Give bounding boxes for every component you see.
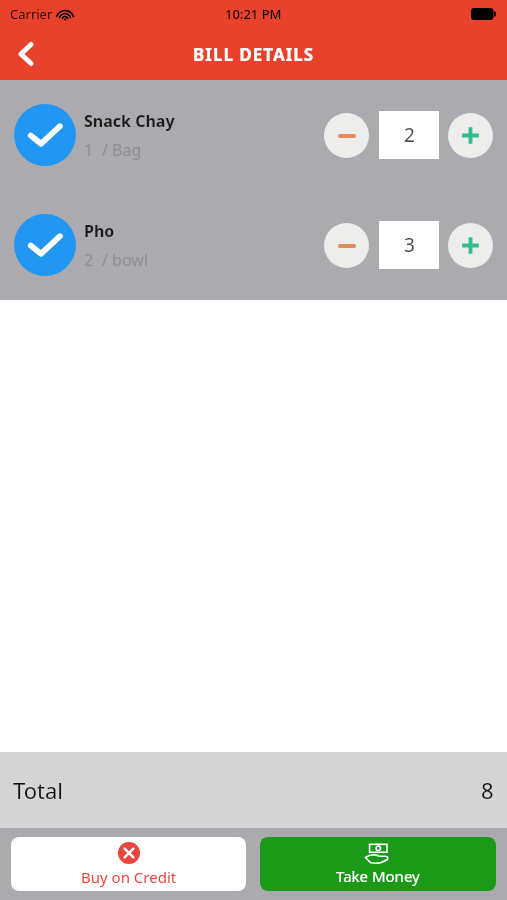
- staticText: / Bag: [102, 139, 142, 161]
- button[interactable]: Toggle Snack Chay: [14, 104, 76, 166]
- staticText: / bowl: [102, 249, 149, 271]
- button[interactable]: Increase: [448, 113, 493, 158]
- button[interactable]: Buy on Credit: [11, 837, 246, 891]
- button[interactable]: Decrease: [324, 113, 369, 158]
- staticText: 8: [481, 775, 494, 805]
- staticText: 1: [84, 139, 94, 161]
- staticText: 10:21 PM: [225, 5, 282, 23]
- staticText: Take Money: [336, 866, 420, 886]
- button[interactable]: Toggle Pho: [14, 214, 76, 276]
- staticText: Snack Chay: [84, 110, 175, 132]
- staticText: Total: [13, 775, 63, 805]
- staticText: 2: [404, 122, 415, 148]
- staticText: 3: [404, 232, 415, 258]
- staticText: 2: [84, 249, 94, 271]
- button[interactable]: Increase: [448, 223, 493, 268]
- button[interactable]: 3: [379, 221, 439, 269]
- staticText: Pho: [84, 220, 115, 242]
- button[interactable]: Decrease: [324, 223, 369, 268]
- staticText: BILL DETAILS: [193, 43, 315, 66]
- staticText: Buy on Credit: [81, 867, 177, 887]
- button[interactable]: Toggle Pho: [0, 190, 507, 300]
- staticText: Carrier: [10, 5, 53, 23]
- button[interactable]: Take Money: [260, 837, 496, 891]
- button[interactable]: 2: [379, 111, 439, 159]
- button[interactable]: Toggle Snack Chay: [0, 80, 507, 190]
- button[interactable]: Back: [0, 28, 52, 80]
